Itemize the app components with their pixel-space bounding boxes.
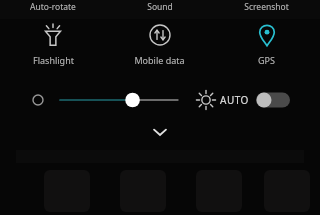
button[interactable]: Mobile data xyxy=(106,19,213,81)
button[interactable]: Sound xyxy=(106,0,213,19)
staticText: Mobile data xyxy=(134,54,185,66)
staticText: AUTO xyxy=(220,93,249,107)
button[interactable]: AUTO xyxy=(220,86,290,114)
staticText: Auto-rotate xyxy=(30,1,76,13)
button[interactable]: Expand quick settings xyxy=(143,119,177,145)
button[interactable]: Brightness slider xyxy=(60,85,178,115)
button[interactable]: Screenshot xyxy=(213,0,320,19)
button[interactable]: Flashlight xyxy=(0,19,106,81)
button[interactable]: Auto-rotate xyxy=(0,0,106,19)
staticText: Sound xyxy=(147,1,173,13)
button[interactable]: GPS xyxy=(213,19,320,81)
button[interactable]: Minimum brightness xyxy=(28,90,48,110)
button[interactable]: Brightness xyxy=(195,89,217,111)
staticText: GPS xyxy=(258,54,275,66)
staticText: Flashlight xyxy=(33,54,74,66)
staticText: Screenshot xyxy=(244,1,289,13)
